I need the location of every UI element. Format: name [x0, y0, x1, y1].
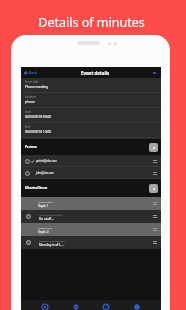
button[interactable]: Event title [21, 78, 161, 93]
button[interactable]: john@xbx.com [21, 167, 161, 179]
button[interactable]: Add [149, 184, 158, 193]
staticText: Topic 2 [38, 230, 49, 234]
staticText: Do stuff... [39, 217, 54, 221]
staticText: phone [25, 100, 35, 104]
button[interactable]: End [21, 123, 161, 138]
staticText: john@xbx.com [36, 171, 54, 175]
staticText: Event details [81, 70, 110, 76]
staticText: Agenda item [38, 200, 53, 203]
button[interactable]: Contacts [69, 300, 83, 310]
staticText: Details of minutes [38, 14, 145, 31]
button[interactable]: Add [149, 143, 158, 152]
staticText: Start [25, 110, 32, 114]
staticText: patrick@xbx.com [36, 159, 57, 163]
staticText: Agenda item [38, 226, 53, 229]
button[interactable]: Agenda item [21, 223, 161, 236]
staticText: Action @ 04/30/2018 [39, 213, 63, 216]
staticText: Location [25, 95, 37, 99]
staticText: Back [29, 70, 38, 75]
staticText: 04/30/2018 09:00 [25, 115, 52, 119]
staticText: Persons [25, 145, 37, 149]
staticText: Phone meeting [25, 85, 49, 89]
button[interactable]: patrick@xbx.com [21, 155, 161, 167]
staticText: Minutes/Items [25, 186, 48, 190]
staticText: 04/30/2018 10:00 [25, 130, 52, 134]
button[interactable]: Action @ 04/30/2018 [21, 210, 161, 223]
button[interactable]: Location [21, 93, 161, 108]
staticText: Monday is of L... [39, 243, 64, 247]
button[interactable]: Agenda item [21, 197, 161, 210]
button[interactable]: History [99, 300, 113, 310]
button[interactable]: Notes [130, 300, 144, 310]
button[interactable]: Start [21, 108, 161, 123]
button[interactable]: Back [24, 70, 38, 75]
staticText: End [25, 125, 31, 129]
button[interactable]: Decision @ participants [21, 236, 161, 249]
staticText: Event title [25, 80, 39, 84]
staticText: Topic 1 [38, 204, 49, 208]
staticText: Decision @ participants [39, 239, 66, 242]
button[interactable]: Calendar [38, 300, 52, 310]
